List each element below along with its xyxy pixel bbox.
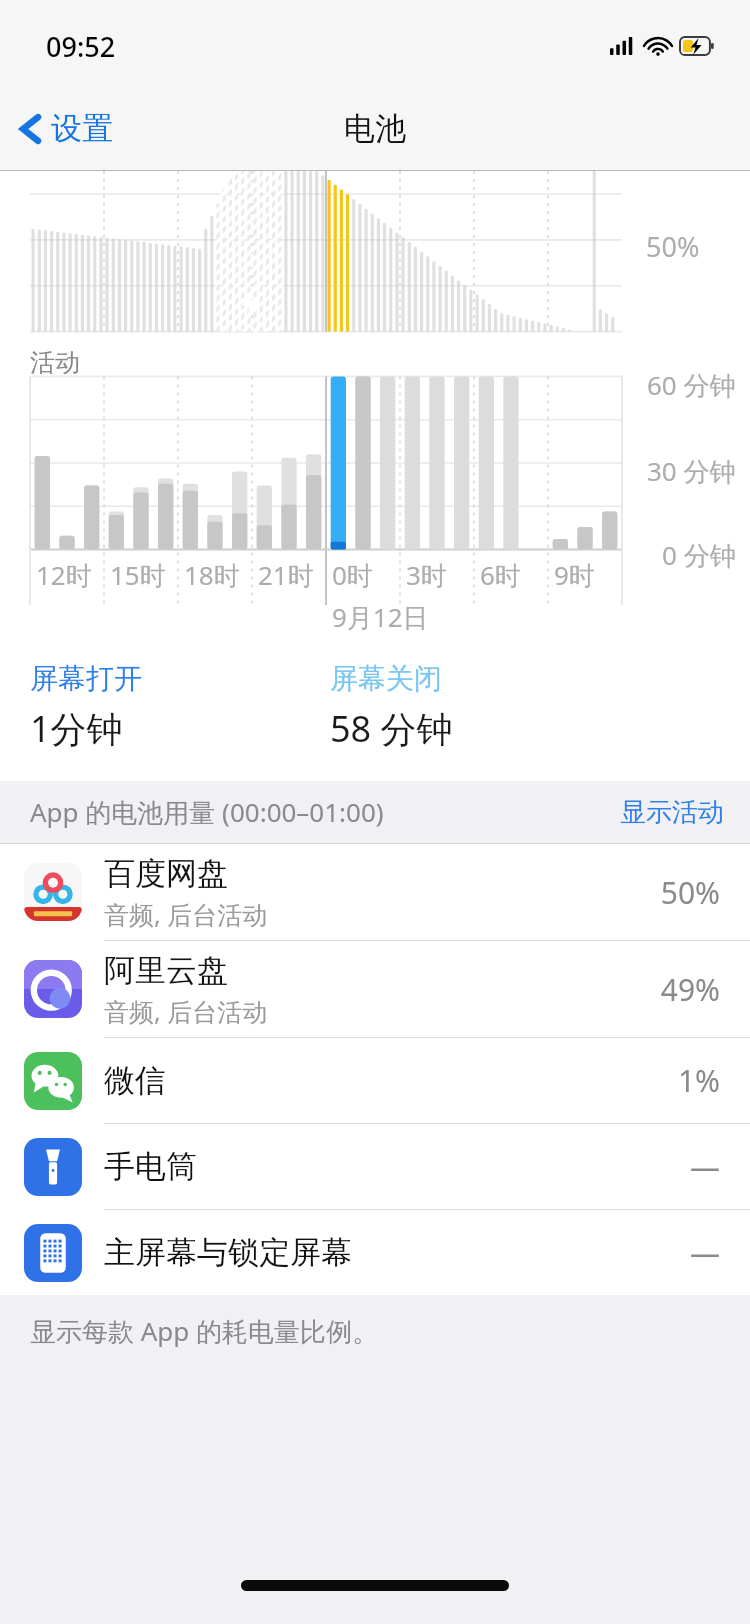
button[interactable]: 主屏幕与锁定屏幕 (0, 1210, 750, 1295)
staticText: — (690, 1232, 720, 1273)
staticText: 屏幕关闭 (330, 661, 442, 696)
button[interactable]: 设置 (0, 101, 129, 156)
staticText: 50% (660, 872, 720, 913)
staticText: 9月12日 (332, 599, 429, 635)
staticText: 50% (646, 228, 700, 265)
staticText: 手电筒 (104, 1147, 197, 1186)
staticText: 活动 (30, 347, 80, 378)
button[interactable]: 手电筒 (0, 1124, 750, 1209)
staticText: 阿里云盘 (104, 951, 228, 990)
button[interactable]: 百度网盘 (0, 844, 750, 940)
staticText: 15时 (110, 557, 166, 593)
staticText: 屏幕打开 (30, 661, 142, 696)
staticText: 音频, 后台活动 (104, 994, 268, 1028)
staticText: 60 分钟 (647, 367, 736, 403)
staticText: 音频, 后台活动 (104, 897, 268, 931)
staticText: 3时 (406, 557, 447, 593)
staticText: 主屏幕与锁定屏幕 (104, 1233, 352, 1272)
staticText: 49% (660, 969, 720, 1010)
staticText: 电池 (344, 109, 406, 148)
staticText: 百度网盘 (104, 854, 228, 893)
staticText: 12时 (36, 557, 92, 593)
staticText: 58 分钟 (330, 704, 453, 753)
staticText: 18时 (184, 557, 240, 593)
staticText: 30 分钟 (647, 453, 736, 489)
staticText: 21时 (258, 557, 314, 593)
staticText: 1分钟 (30, 704, 123, 753)
staticText: App 的电池用量 (00:00–01:00) (30, 794, 384, 830)
staticText: 0 分钟 (662, 537, 736, 573)
staticText: — (690, 1146, 720, 1187)
staticText: 09:52 (46, 28, 116, 65)
button[interactable]: 阿里云盘 (0, 941, 750, 1037)
staticText: 设置 (51, 109, 113, 148)
staticText: 6时 (480, 557, 521, 593)
staticText: 9时 (554, 557, 595, 593)
staticText: 显示活动 (620, 796, 724, 829)
staticText: 1% (677, 1060, 720, 1101)
button[interactable]: 微信 (0, 1038, 750, 1123)
button[interactable]: 显示活动 (604, 786, 750, 839)
staticText: 0时 (332, 557, 373, 593)
staticText: 微信 (104, 1061, 166, 1100)
staticText: 显示每款 App 的耗电量比例。 (30, 1313, 379, 1349)
